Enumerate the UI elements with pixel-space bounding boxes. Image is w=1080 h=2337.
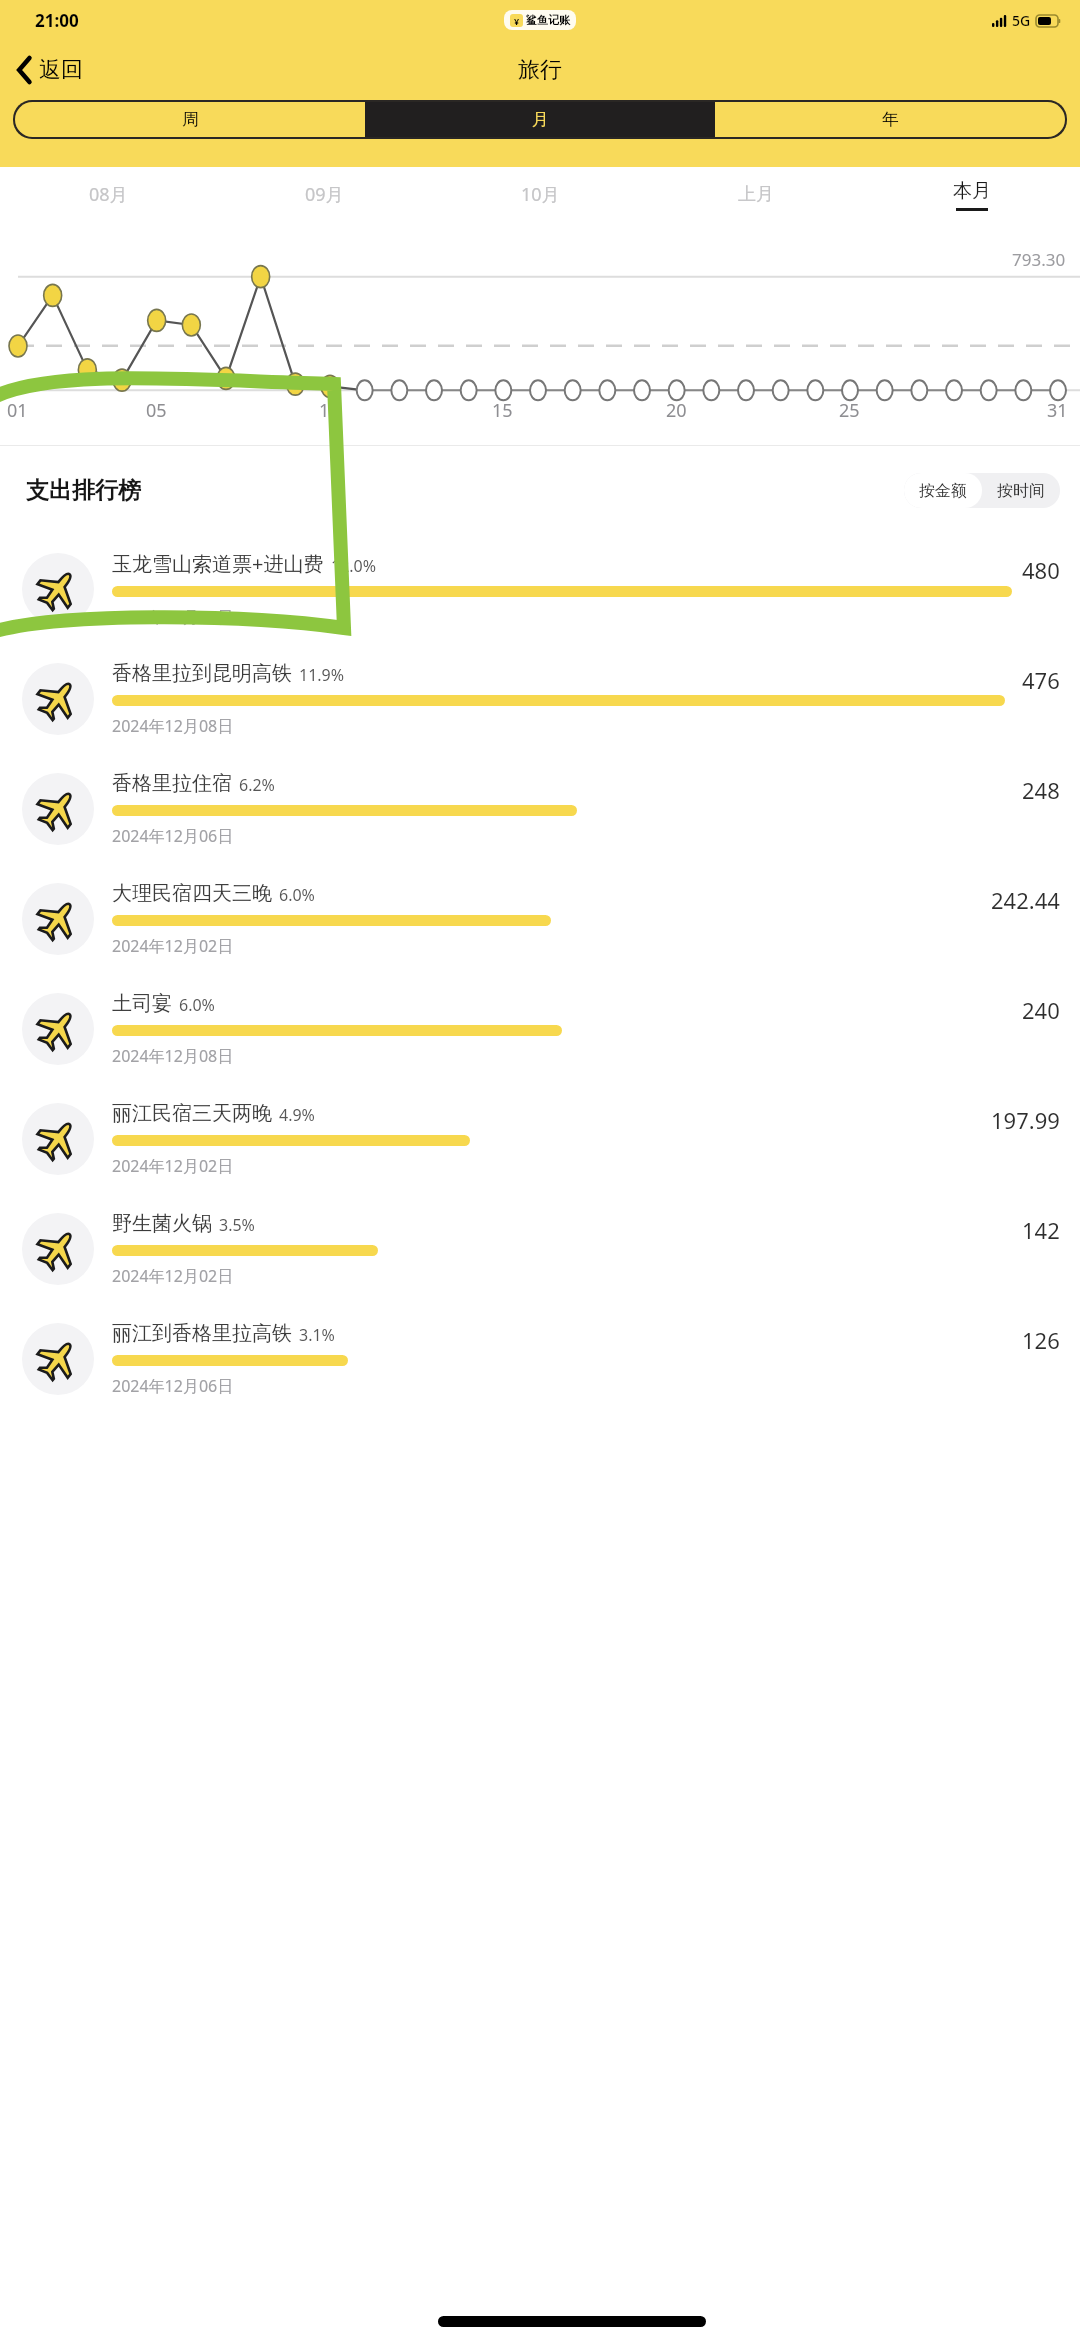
staticText: 周 xyxy=(182,109,199,130)
staticText: 142 xyxy=(1022,1215,1060,1245)
button[interactable]: Travel category xyxy=(0,974,1080,1084)
staticText: 返回 xyxy=(39,56,83,84)
staticText: 248 xyxy=(1022,775,1060,805)
staticText: 25 xyxy=(839,398,860,423)
button[interactable]: 09月 xyxy=(216,167,432,222)
staticText: 6.0% xyxy=(179,994,215,1016)
staticText: 09月 xyxy=(305,182,344,207)
other: Travel category xyxy=(38,679,78,719)
staticText: 土司宴 xyxy=(112,991,172,1016)
staticText: 480 xyxy=(1022,555,1060,585)
button[interactable]: 本月 xyxy=(864,167,1080,222)
staticText: 丽江民宿三天两晚 xyxy=(112,1101,272,1126)
other: Travel category xyxy=(38,1339,78,1379)
staticText: 6.2% xyxy=(239,774,275,796)
staticText: ¥ xyxy=(514,15,520,27)
staticText: 按时间 xyxy=(997,481,1045,501)
button[interactable]: 10月 xyxy=(432,167,648,222)
button[interactable]: Travel category xyxy=(0,1304,1080,1414)
staticText: 476 xyxy=(1022,665,1060,695)
staticText: 4.9% xyxy=(279,1104,315,1126)
staticText: 6.0% xyxy=(279,884,315,906)
staticText: 本月 xyxy=(953,179,991,203)
staticText: 月 xyxy=(532,109,549,130)
staticText: 793.30 xyxy=(1012,248,1066,271)
staticText: 上月 xyxy=(738,183,774,206)
button[interactable]: 月 xyxy=(365,102,715,137)
staticText: 旅行 xyxy=(518,56,562,84)
button[interactable]: 按金额 xyxy=(904,473,982,508)
staticText: 香格里拉住宿 xyxy=(112,771,232,796)
staticText: 支出排行榜 xyxy=(26,476,141,505)
staticText: 10月 xyxy=(521,182,560,207)
staticText: 年 xyxy=(882,109,899,130)
staticText: 2024年12月08日 xyxy=(112,1045,234,1067)
other: Travel category xyxy=(38,1119,78,1159)
button[interactable]: 年 xyxy=(715,102,1065,137)
staticText: 20 xyxy=(666,398,687,423)
staticText: 2024年12月02日 xyxy=(112,1155,234,1177)
staticText: 15 xyxy=(492,398,513,423)
button[interactable]: 上月 xyxy=(648,167,864,222)
other: Travel category xyxy=(38,1229,78,1269)
staticText: 126 xyxy=(1022,1325,1060,1355)
other: Travel category xyxy=(38,569,78,609)
staticText: 按金额 xyxy=(919,481,967,501)
other: Travel category xyxy=(38,789,78,829)
staticText: 242.44 xyxy=(991,885,1060,915)
button[interactable]: 08月 xyxy=(0,167,216,222)
staticText: 香格里拉到昆明高铁 xyxy=(112,661,292,686)
staticText: 197.99 xyxy=(991,1105,1060,1135)
staticText: 10 xyxy=(319,398,340,423)
staticText: 2024年12月02日 xyxy=(112,935,234,957)
staticText: 05 xyxy=(146,398,167,423)
button[interactable]: Travel category xyxy=(0,864,1080,974)
button[interactable]: Travel category xyxy=(0,1084,1080,1194)
staticText: 2024年12月06日 xyxy=(112,1375,234,1397)
staticText: 大理民宿四天三晚 xyxy=(112,881,272,906)
button[interactable]: Travel category xyxy=(0,754,1080,864)
staticText: 08月 xyxy=(89,182,128,207)
staticText: 01 xyxy=(7,398,28,423)
staticText: 鲨鱼记账 xyxy=(526,13,570,27)
staticText: 3.1% xyxy=(299,1324,335,1346)
staticText: 2024年12月06日 xyxy=(112,825,234,847)
staticText: 31 xyxy=(1047,398,1068,423)
staticText: 12.0% xyxy=(331,555,377,577)
staticText: 2024年12月02日 xyxy=(112,1265,234,1287)
button[interactable]: 按时间 xyxy=(982,473,1060,508)
button[interactable]: Travel category xyxy=(0,644,1080,754)
other: Travel category xyxy=(38,899,78,939)
staticText: 玉龙雪山索道票+进山费 xyxy=(112,550,324,577)
staticText: 240 xyxy=(1022,995,1060,1025)
other: Travel category xyxy=(38,1009,78,1049)
button[interactable]: 周 xyxy=(15,102,365,137)
staticText: 2024年12月05日 xyxy=(112,606,234,628)
button[interactable]: Travel category xyxy=(0,1194,1080,1304)
staticText: 2024年12月08日 xyxy=(112,715,234,737)
button[interactable]: 返回 xyxy=(0,50,95,90)
staticText: 21:00 xyxy=(35,9,79,32)
button[interactable]: Travel category xyxy=(0,534,1080,644)
staticText: 野生菌火锅 xyxy=(112,1211,212,1236)
staticText: 11.9% xyxy=(299,664,345,686)
staticText: 5G xyxy=(1012,11,1031,30)
staticText: 丽江到香格里拉高铁 xyxy=(112,1321,292,1346)
staticText: 3.5% xyxy=(219,1214,255,1236)
